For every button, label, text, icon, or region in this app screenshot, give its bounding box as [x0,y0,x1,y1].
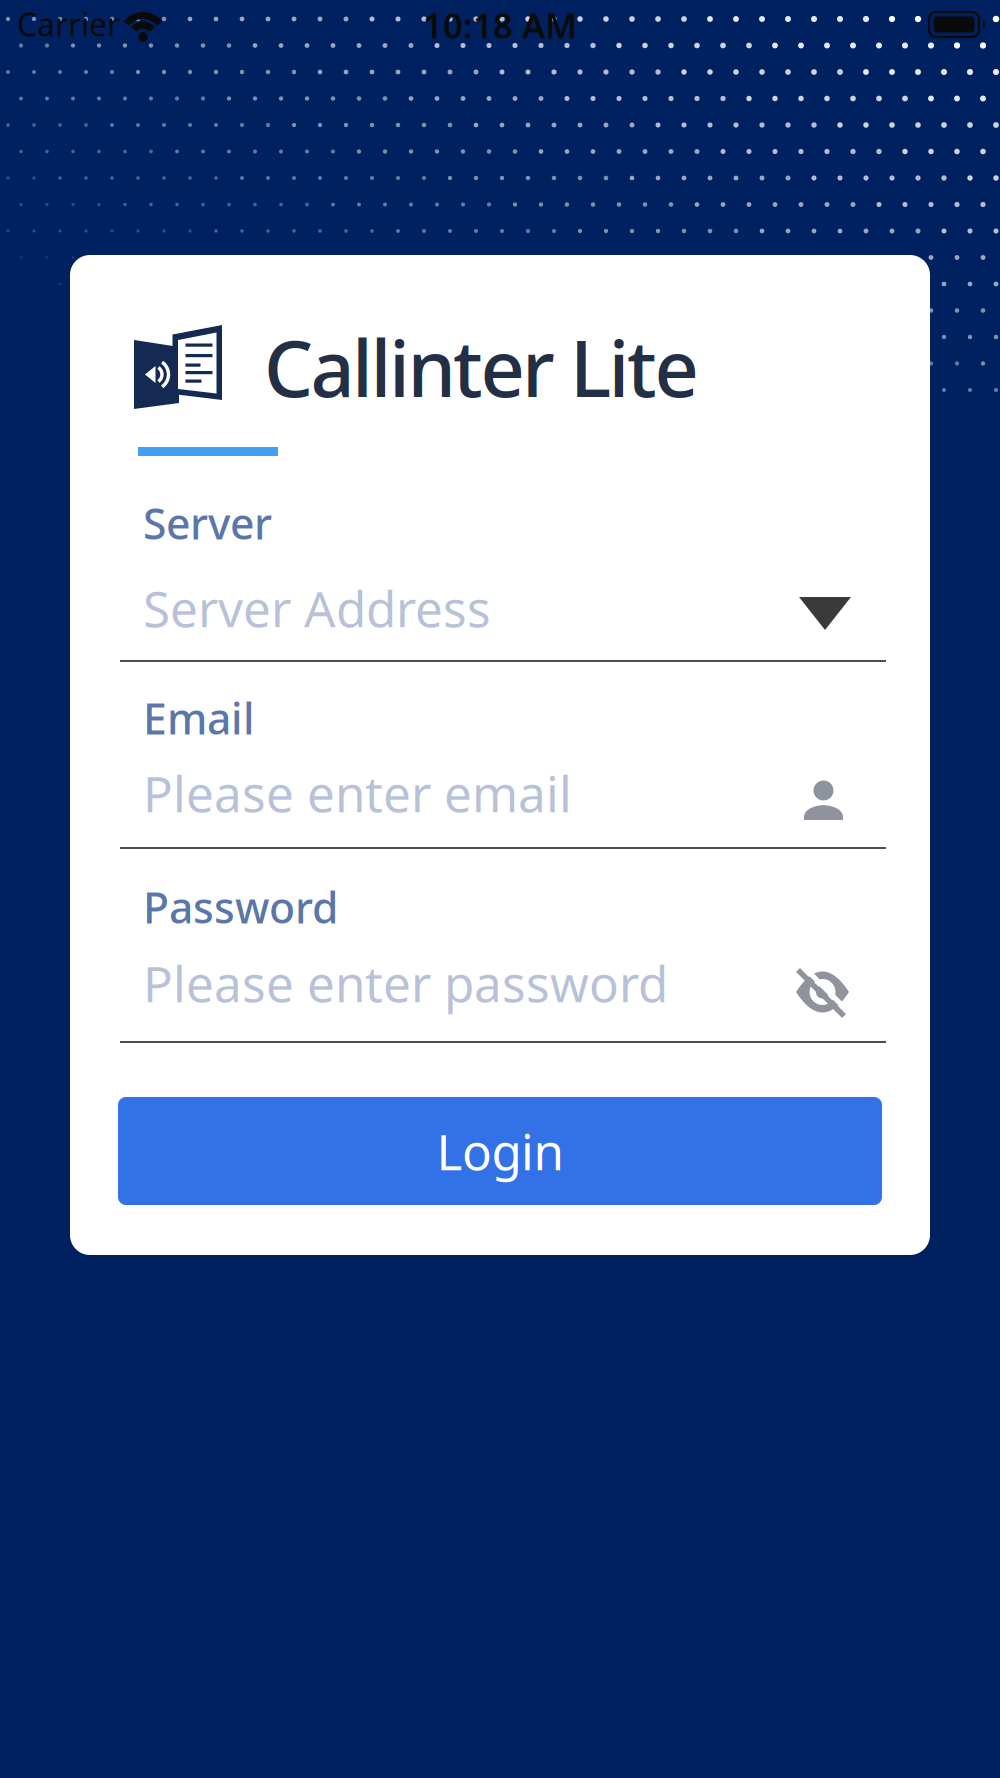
staticText: Please enter password [143,950,668,1016]
staticText: Login [436,1118,563,1184]
staticText: Carrier [17,3,120,45]
button[interactable]: Show password [796,963,852,1019]
staticText: Password [143,879,338,935]
staticText: Please enter email [143,760,572,826]
staticText: Server Address [143,575,491,641]
button[interactable]: Select server [799,597,851,630]
staticText: Email [143,690,255,746]
staticText: Server [143,495,272,551]
staticText: Callinter Lite [264,316,698,418]
button[interactable]: Login [118,1097,882,1205]
staticText: 10:18 AM [423,2,577,48]
